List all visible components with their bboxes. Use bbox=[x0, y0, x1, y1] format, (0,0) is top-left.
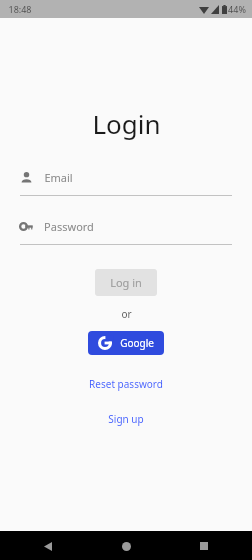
button[interactable]: Sign up bbox=[100, 408, 152, 430]
button[interactable]: Home bbox=[114, 534, 138, 558]
staticText: Login bbox=[92, 106, 161, 141]
button[interactable]: Email bbox=[20, 165, 232, 196]
staticText: 18:48 bbox=[8, 3, 32, 15]
staticText: Password bbox=[44, 219, 94, 234]
button[interactable]: Log in bbox=[95, 269, 157, 296]
staticText: Reset password bbox=[89, 377, 163, 391]
staticText: Google bbox=[120, 336, 154, 350]
button[interactable]: Password bbox=[20, 214, 232, 245]
button[interactable]: Back bbox=[36, 534, 60, 558]
button[interactable]: Reset password bbox=[81, 373, 171, 395]
staticText: Log in bbox=[110, 275, 142, 290]
staticText: 44% bbox=[228, 3, 246, 15]
staticText: or bbox=[121, 307, 132, 321]
staticText: Email bbox=[44, 170, 73, 185]
button[interactable]: Google bbox=[88, 331, 164, 355]
button[interactable]: Recent apps bbox=[192, 534, 216, 558]
staticText: Sign up bbox=[108, 412, 144, 426]
